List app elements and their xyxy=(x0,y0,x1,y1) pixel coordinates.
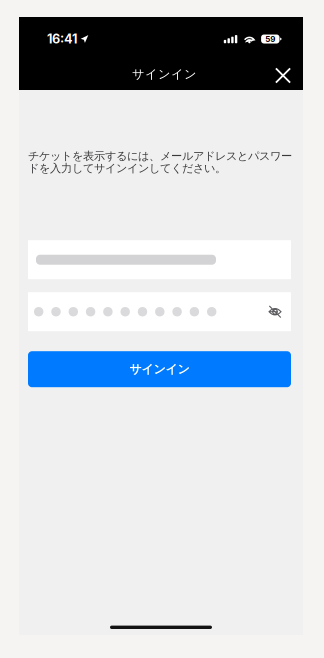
button[interactable]: メールアドレス xyxy=(28,240,291,279)
staticText: サインイン xyxy=(129,362,189,377)
staticText: サインイン xyxy=(132,66,197,82)
staticText: 16:41 xyxy=(47,31,77,47)
staticText: 59 xyxy=(265,34,275,44)
button[interactable]: パスワードを表示 xyxy=(265,302,285,322)
button[interactable]: 閉じる xyxy=(269,61,297,89)
button[interactable]: サインイン xyxy=(28,351,291,387)
staticText: チケットを表示するには、メールアドレスとパスワードを入力してサインインしてくださ… xyxy=(28,149,292,175)
